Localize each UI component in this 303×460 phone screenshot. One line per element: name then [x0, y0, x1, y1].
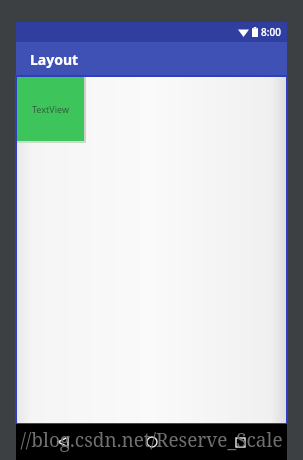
button[interactable]: Home: [139, 429, 165, 455]
button[interactable]: TextView: [17, 77, 84, 141]
button[interactable]: Layout: [16, 42, 287, 76]
staticText: //blog.csdn.net/Reserve_Scale: [0, 427, 303, 453]
button[interactable]: Recents: [227, 429, 253, 455]
staticText: TextView: [32, 103, 69, 115]
staticText: 8:00: [261, 25, 281, 39]
button[interactable]: Back: [50, 429, 76, 455]
staticText: Layout: [30, 50, 79, 69]
